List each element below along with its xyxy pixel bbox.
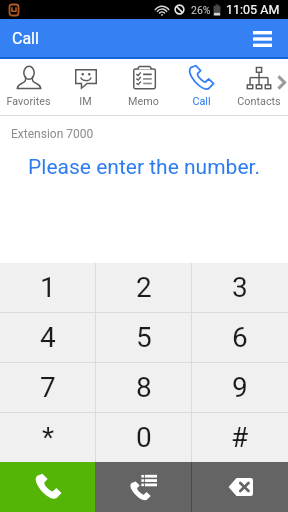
staticText: 2 xyxy=(136,271,152,304)
button[interactable]: 1 xyxy=(0,263,96,312)
button[interactable]: Call log xyxy=(95,462,191,512)
button[interactable]: Call xyxy=(0,462,95,512)
staticText: 11:05 AM xyxy=(226,2,280,17)
button[interactable]: 2 xyxy=(96,263,192,312)
button[interactable]: # xyxy=(192,413,288,462)
button[interactable]: 5 xyxy=(96,313,192,362)
button[interactable]: 8 xyxy=(96,363,192,412)
staticText: Favorites xyxy=(6,95,51,108)
staticText: Extension 7000 xyxy=(11,127,94,141)
staticText: Memo xyxy=(128,95,159,108)
staticText: 9 xyxy=(232,371,248,404)
button[interactable]: 3 xyxy=(192,263,288,312)
button[interactable]: Backspace xyxy=(192,462,288,512)
staticText: # xyxy=(231,421,249,454)
staticText: * xyxy=(42,421,55,454)
staticText: 7 xyxy=(40,371,56,404)
staticText: Please enter the number. xyxy=(0,155,288,180)
button[interactable]: Favorites xyxy=(0,59,57,115)
staticText: Contacts xyxy=(237,95,281,108)
button[interactable]: Menu xyxy=(240,19,288,57)
button[interactable]: * xyxy=(0,413,96,462)
button[interactable]: 6 xyxy=(192,313,288,362)
staticText: Call xyxy=(192,95,211,108)
staticText: IM xyxy=(79,95,92,108)
button[interactable]: IM xyxy=(57,59,114,115)
button[interactable]: 9 xyxy=(192,363,288,412)
staticText: 6 xyxy=(232,321,248,354)
button[interactable]: 0 xyxy=(96,413,192,462)
staticText: Call xyxy=(12,29,39,48)
button[interactable]: 7 xyxy=(0,363,96,412)
button[interactable]: Call xyxy=(172,59,230,115)
button[interactable]: 4 xyxy=(0,313,96,362)
staticText: 0 xyxy=(136,421,152,454)
button[interactable]: Memo xyxy=(114,59,172,115)
staticText: 26% xyxy=(191,4,211,16)
staticText: 4 xyxy=(40,321,56,354)
staticText: 1 xyxy=(40,271,56,304)
staticText: 8 xyxy=(136,371,152,404)
staticText: 5 xyxy=(136,321,152,354)
button[interactable]: Contacts xyxy=(230,59,288,115)
staticText: 3 xyxy=(232,271,248,304)
